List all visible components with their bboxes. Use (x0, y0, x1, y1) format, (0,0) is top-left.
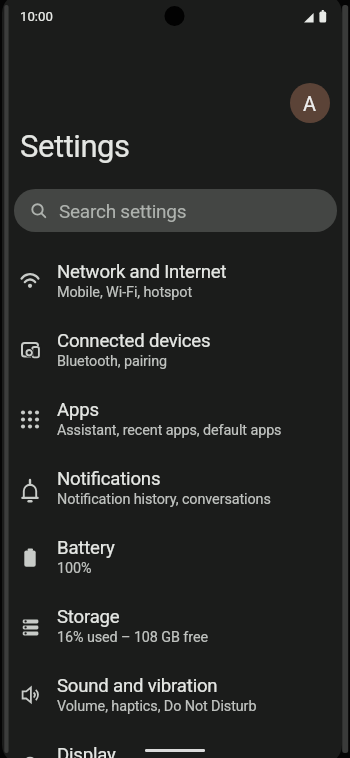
staticText: 100% (57, 560, 92, 577)
staticText: Search settings (59, 200, 187, 222)
staticText: Settings (20, 128, 130, 164)
button[interactable]: Storage (0, 591, 350, 660)
button[interactable]: Notifications (0, 453, 350, 522)
button[interactable]: Display (0, 729, 350, 758)
staticText: Apps (57, 399, 99, 421)
button[interactable]: Sound and vibration (0, 660, 350, 729)
staticText: Storage (57, 606, 120, 628)
staticText: Volume, haptics, Do Not Disturb (57, 698, 257, 715)
staticText: Bluetooth, pairing (57, 353, 168, 370)
staticText: Network and Internet (57, 261, 227, 283)
staticText: Battery (57, 537, 115, 559)
staticText: Assistant, recent apps, default apps (57, 422, 282, 439)
button[interactable]: Search settings (14, 189, 337, 232)
button[interactable]: Connected devices (0, 315, 350, 384)
staticText: Connected devices (57, 330, 211, 352)
staticText: Notification history, conversations (57, 491, 271, 508)
staticText: Mobile, Wi-Fi, hotspot (57, 284, 193, 301)
staticText: Notifications (57, 468, 161, 490)
button[interactable]: Apps (0, 384, 350, 453)
staticText: A (303, 92, 317, 115)
button[interactable]: Battery (0, 522, 350, 591)
staticText: 16% used – 108 GB free (57, 629, 208, 646)
staticText: Sound and vibration (57, 675, 218, 697)
button[interactable]: A (290, 83, 330, 123)
staticText: 10:00 (20, 9, 53, 24)
staticText: Display (57, 744, 116, 758)
button[interactable]: Network and Internet (0, 246, 350, 315)
